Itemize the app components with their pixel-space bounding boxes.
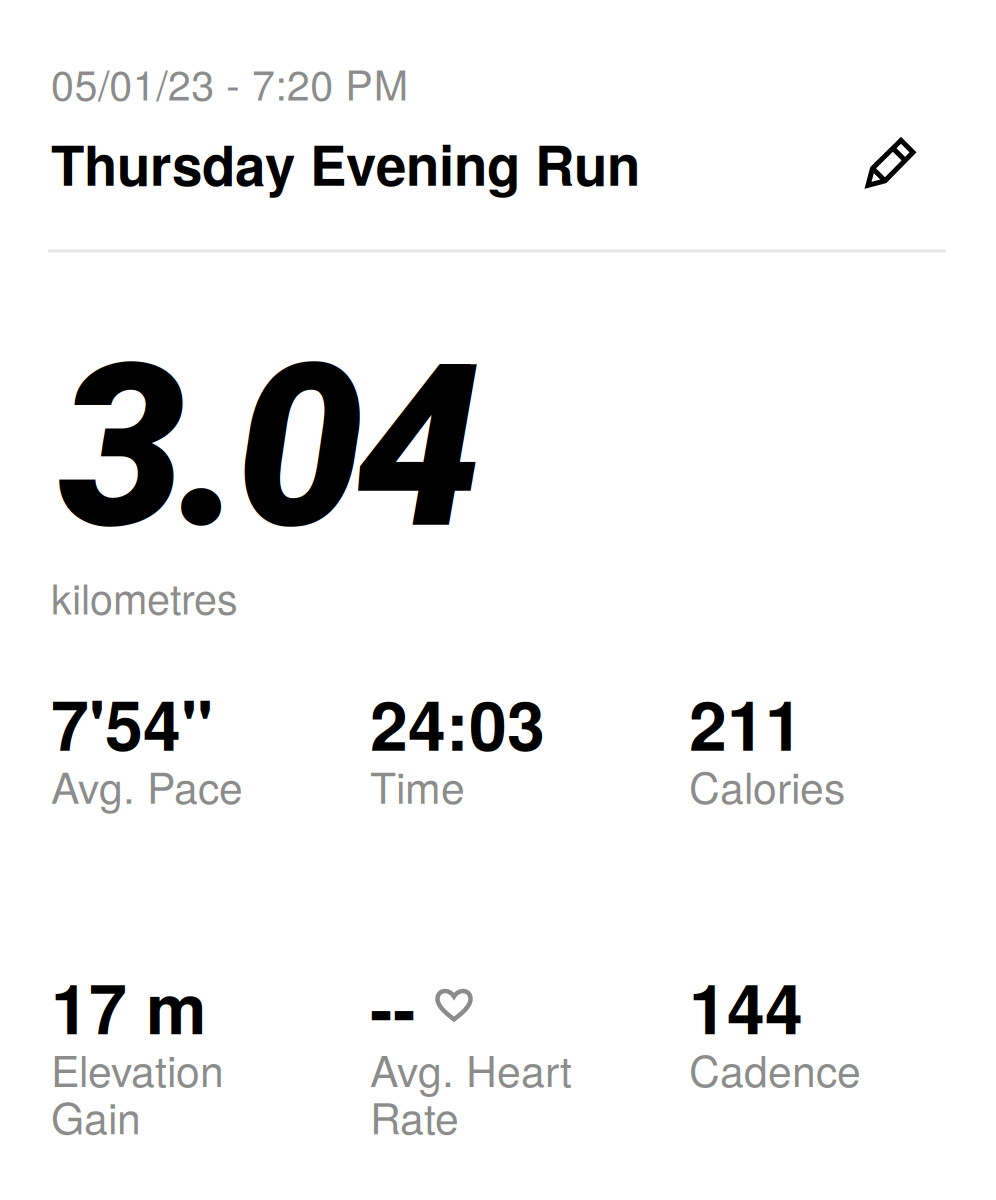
staticText: Rate xyxy=(370,1085,459,1146)
staticText: Avg. Heart xyxy=(370,1038,572,1099)
staticText: Elevation xyxy=(51,1038,224,1099)
staticText: 3.04 xyxy=(58,314,482,580)
staticText: Avg. Pace xyxy=(51,755,243,816)
button[interactable]: Edit activity xyxy=(843,126,937,200)
staticText: 24:03 xyxy=(370,674,545,772)
staticText: 7'54'' xyxy=(51,674,213,772)
staticText: Gain xyxy=(51,1085,141,1146)
staticText: Calories xyxy=(689,755,845,816)
staticText: 05/01/23 - 7:20 PM xyxy=(51,53,408,112)
staticText: Cadence xyxy=(689,1038,861,1099)
staticText: 144 xyxy=(689,958,803,1055)
staticText: -- xyxy=(370,958,416,1055)
staticText: Time xyxy=(370,755,465,816)
staticText: Thursday Evening Run xyxy=(51,124,640,202)
staticText: 211 xyxy=(689,674,803,772)
staticText: kilometres xyxy=(51,567,238,626)
staticText: 17 m xyxy=(51,958,206,1055)
